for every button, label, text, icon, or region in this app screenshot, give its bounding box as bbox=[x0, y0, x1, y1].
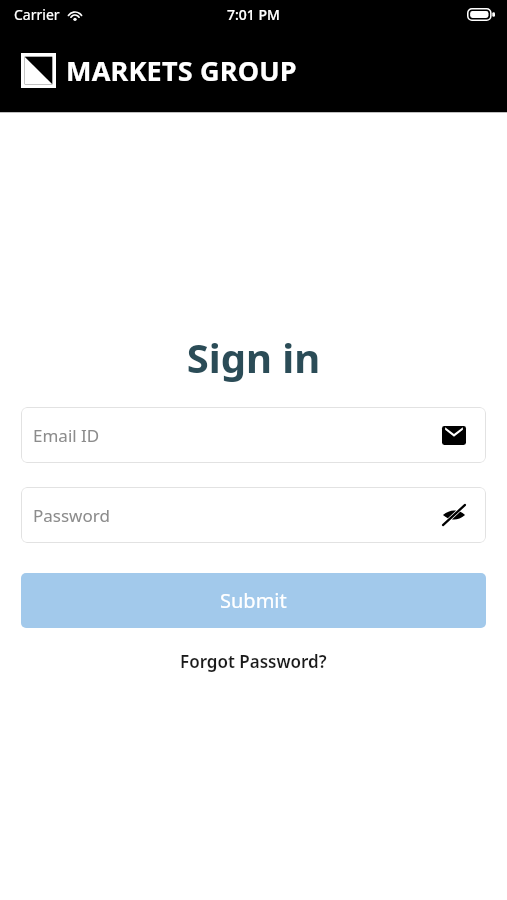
staticText: Submit bbox=[220, 587, 287, 614]
staticText: Carrier bbox=[14, 5, 60, 24]
staticText: Sign in bbox=[0, 330, 507, 384]
button[interactable]: Email bbox=[438, 419, 470, 451]
button[interactable]: Submit bbox=[21, 573, 486, 628]
staticText: MARKETS GROUP bbox=[66, 52, 297, 89]
button[interactable]: Email ID bbox=[21, 407, 486, 463]
staticText: Password bbox=[33, 504, 438, 527]
staticText: 7:01 PM bbox=[227, 5, 280, 24]
button[interactable]: Forgot Password? bbox=[172, 646, 335, 677]
button[interactable]: Markets Group home bbox=[21, 52, 297, 89]
button[interactable]: Show password bbox=[438, 499, 470, 531]
staticText: Email ID bbox=[33, 424, 438, 447]
button[interactable]: Password bbox=[21, 487, 486, 543]
staticText: Forgot Password? bbox=[180, 650, 327, 673]
